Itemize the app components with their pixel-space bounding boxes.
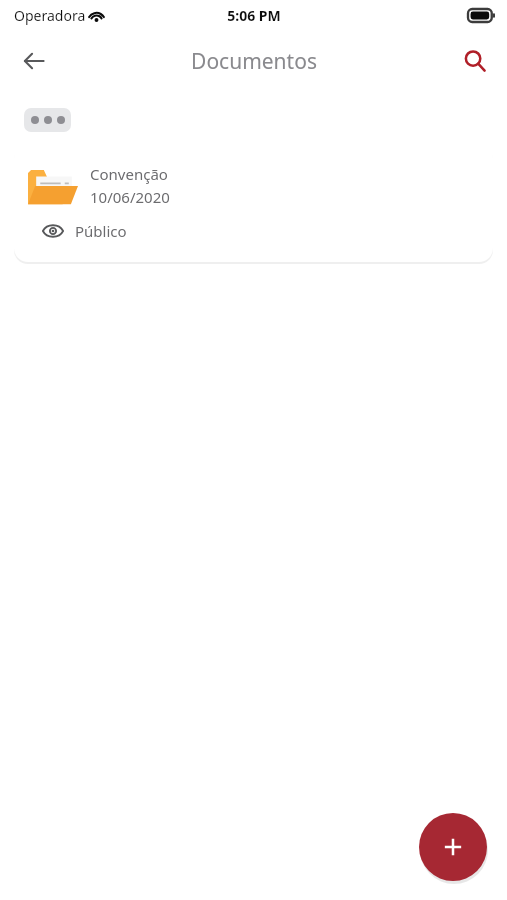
staticText: Público [75,221,127,241]
staticText: 10/06/2020 [90,187,170,207]
button[interactable]: Add document [419,813,487,881]
staticText: Operadora [14,6,86,25]
button[interactable]: Convenção [14,145,493,262]
button[interactable]: Search [451,37,499,85]
staticText: Convenção [90,164,168,184]
staticText: Documentos [191,47,317,76]
staticText: 5:06 PM [227,6,281,25]
button[interactable]: Back [10,37,58,85]
button[interactable]: More options [24,108,71,132]
